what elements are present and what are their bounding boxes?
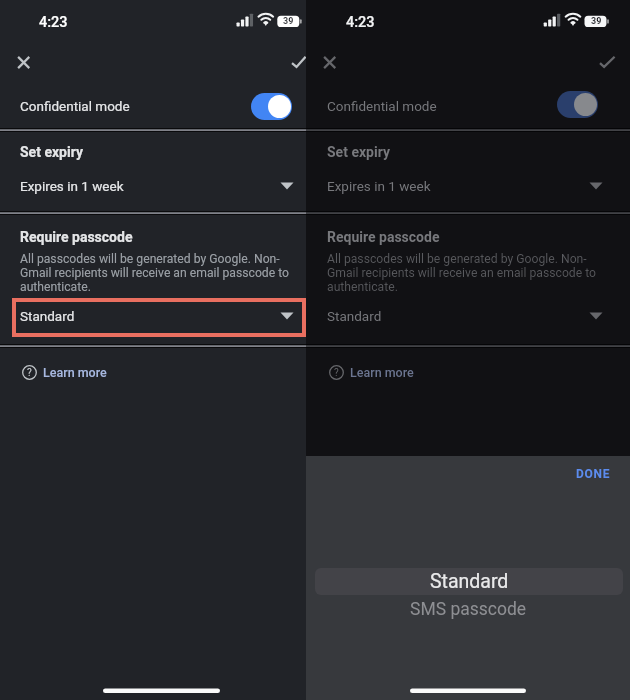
staticText: Require passcode <box>20 229 133 245</box>
button[interactable]: Close <box>312 45 348 81</box>
staticText: ? <box>334 367 339 379</box>
button[interactable]: Save <box>284 45 314 81</box>
button[interactable]: Close <box>6 45 42 81</box>
staticText: Set expiry <box>327 144 390 160</box>
button[interactable]: Expires in 1 week <box>307 164 615 207</box>
button[interactable]: Save <box>592 45 623 81</box>
staticText: Learn more <box>350 365 414 380</box>
staticText: SMS passcode <box>410 599 527 620</box>
staticText: Require passcode <box>327 229 440 245</box>
staticText: Expires in 1 week <box>327 178 431 194</box>
staticText: Confidential mode <box>20 98 130 114</box>
button[interactable]: DONE <box>567 462 619 486</box>
button[interactable]: Confidential mode <box>307 85 615 127</box>
staticText: 4:23 <box>39 14 68 31</box>
button[interactable]: Confidential mode <box>0 85 306 127</box>
staticText: All passcodes will be generated by Googl… <box>327 252 597 294</box>
button[interactable]: ? <box>0 353 306 391</box>
button[interactable]: Standard <box>315 568 623 595</box>
button[interactable]: ? <box>307 353 615 391</box>
staticText: Standard <box>20 308 75 324</box>
staticText: 39 <box>283 16 294 27</box>
staticText: Set expiry <box>20 144 83 160</box>
staticText: All passcodes will be generated by Googl… <box>20 252 290 294</box>
button[interactable]: Expires in 1 week <box>0 164 306 207</box>
staticText: Expires in 1 week <box>20 178 124 194</box>
staticText: 39 <box>591 16 602 27</box>
button[interactable]: Standard <box>307 296 615 335</box>
button[interactable]: SMS passcode <box>306 597 630 621</box>
staticText: ? <box>27 367 32 379</box>
staticText: DONE <box>576 467 611 481</box>
staticText: Standard <box>430 570 509 593</box>
staticText: Standard <box>327 308 382 324</box>
staticText: 4:23 <box>346 14 375 31</box>
button[interactable]: Standard <box>0 296 306 335</box>
staticText: Learn more <box>43 365 107 380</box>
staticText: Confidential mode <box>327 98 437 114</box>
